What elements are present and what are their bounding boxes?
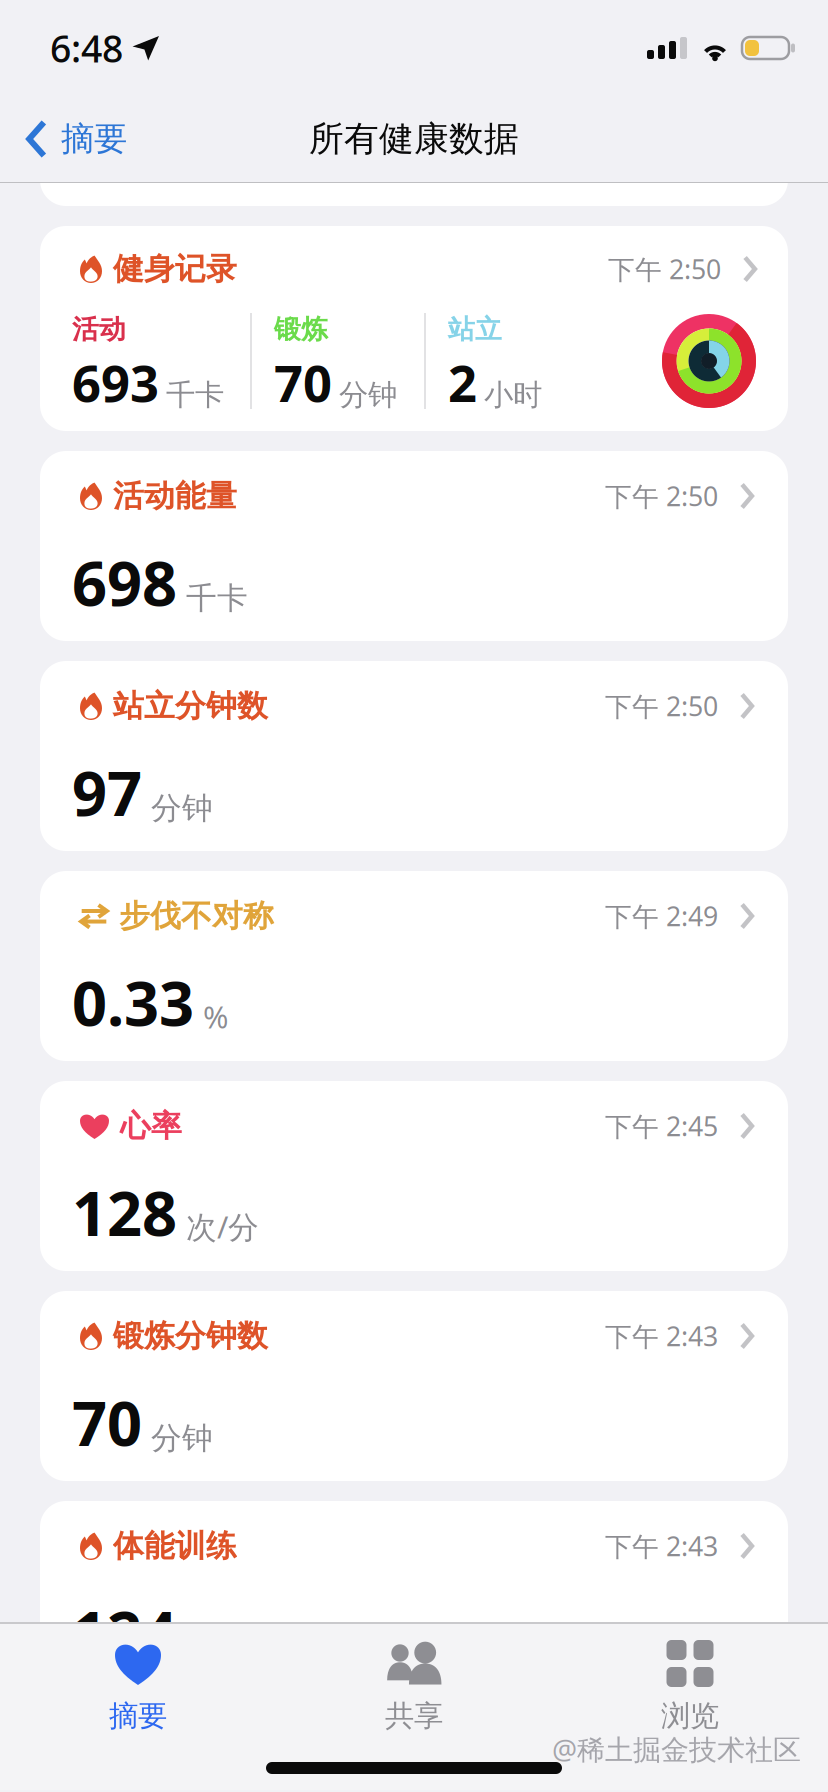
staticText: 6:48 (50, 23, 123, 73)
staticText: 下午 2:49 (605, 898, 718, 934)
staticText: 下午 2:45 (605, 1108, 718, 1144)
staticText: 693 (72, 349, 159, 416)
staticText: 摘要 (109, 1698, 167, 1734)
staticText: 锻炼分钟数 (113, 1317, 268, 1355)
staticText: 0.33 (72, 962, 194, 1043)
staticText: 站立 (448, 313, 502, 346)
staticText: 千卡 (166, 377, 224, 413)
staticText: 分钟 (151, 1419, 213, 1457)
staticText: 共享 (385, 1698, 443, 1734)
staticText: 下午 2:50 (608, 251, 721, 287)
staticText: % (203, 996, 228, 1037)
button[interactable]: 站立分钟数 (40, 661, 788, 851)
staticText: 97 (72, 752, 142, 833)
staticText: 698 (72, 542, 177, 623)
button[interactable]: 健身记录 (40, 226, 788, 431)
staticText: 128 (72, 1172, 177, 1253)
staticText: 分钟 (151, 789, 213, 827)
button[interactable]: 步伐不对称 (40, 871, 788, 1061)
staticText: 小时 (484, 377, 542, 413)
staticText: 活动能量 (113, 477, 237, 515)
staticText: 下午 2:50 (605, 478, 718, 514)
staticText: 步伐不对称 (119, 897, 274, 935)
button[interactable]: 心率 (40, 1081, 788, 1271)
staticText: 健身记录 (113, 250, 237, 288)
staticText: 活动 (72, 313, 126, 346)
staticText: 下午 2:50 (605, 688, 718, 724)
staticText: 分钟 (339, 377, 397, 413)
staticText: 70 (274, 349, 332, 416)
button[interactable]: 摘要 (0, 1624, 276, 1720)
staticText: 下午 2:43 (605, 1318, 718, 1354)
staticText: 千卡 (186, 579, 248, 617)
button[interactable]: 摘要 (0, 96, 143, 182)
button[interactable]: 活动能量 (40, 451, 788, 641)
staticText: 所有健康数据 (309, 118, 519, 160)
button[interactable]: 体能训练 (40, 1501, 788, 1691)
staticText: 2 (448, 349, 477, 416)
staticText: 浏览 (661, 1698, 719, 1734)
staticText: 锻炼 (274, 313, 328, 346)
button[interactable]: 锻炼分钟数 (40, 1291, 788, 1481)
staticText: 124 (72, 1592, 177, 1673)
staticText: @稀土掘金技术社区 (552, 1730, 801, 1768)
staticText: 心率 (120, 1107, 182, 1145)
staticText: 体能训练 (113, 1527, 237, 1565)
button[interactable]: 共享 (276, 1624, 552, 1720)
staticText: 70 (72, 1382, 142, 1463)
staticText: 摘要 (61, 118, 127, 159)
staticText: 站立分钟数 (113, 687, 268, 725)
staticText: 次/分 (186, 1206, 259, 1247)
button[interactable]: 浏览 (552, 1624, 828, 1720)
staticText: 下午 2:43 (605, 1528, 718, 1564)
